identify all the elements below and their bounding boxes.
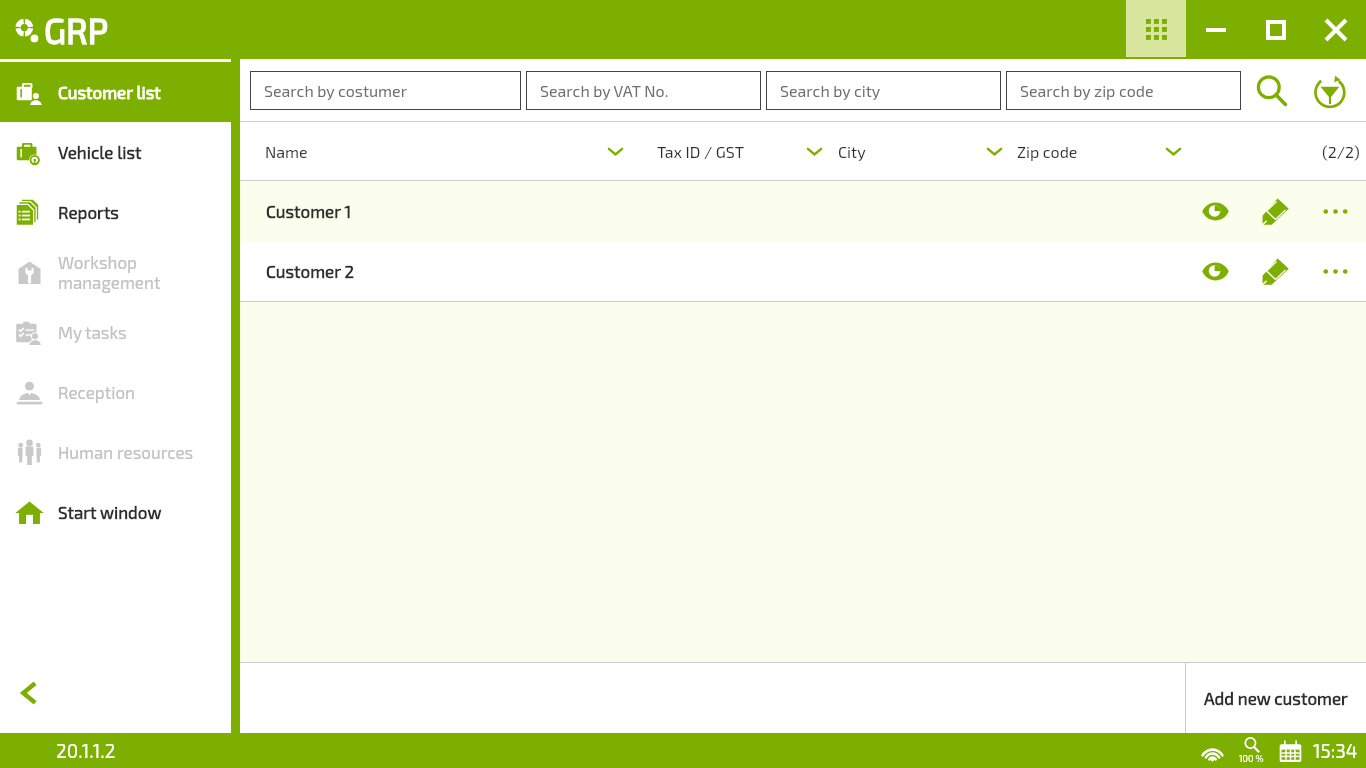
button[interactable]: Close [1306, 0, 1366, 59]
button[interactable]: Customer 1 [240, 181, 1366, 241]
button[interactable]: Minimize [1186, 0, 1246, 59]
staticText: Start window [58, 502, 162, 522]
staticText: Customer list [58, 82, 161, 102]
staticText: Human resources [58, 442, 194, 462]
staticText: Zip code [1017, 142, 1078, 161]
button[interactable]: City [838, 122, 1010, 180]
button[interactable]: Collapse menu [0, 653, 231, 733]
staticText: Workshop management [58, 252, 161, 292]
staticText: Customer 2 [266, 261, 354, 281]
button[interactable]: Workshop management [0, 242, 231, 302]
button[interactable]: Calendar [1273, 734, 1307, 768]
button[interactable]: Maximize [1246, 0, 1306, 59]
button[interactable]: Search [1253, 72, 1291, 110]
button[interactable]: Edit [1253, 189, 1297, 233]
staticText: 15:34 [1313, 739, 1358, 762]
button[interactable]: Search by zip code [1006, 71, 1241, 110]
button[interactable]: Zoom level [1233, 733, 1269, 768]
button[interactable]: Search by city [766, 71, 1001, 110]
button[interactable]: More options [1313, 249, 1357, 293]
button[interactable]: Search by costumer [250, 71, 521, 110]
staticText: Vehicle list [58, 142, 142, 162]
button[interactable]: Reset filter [1312, 72, 1350, 110]
button[interactable]: Start window [0, 482, 231, 542]
staticText: Name [265, 142, 308, 161]
button[interactable]: My tasks [0, 302, 231, 362]
staticText: Customer 1 [266, 201, 352, 221]
button[interactable]: Name [265, 122, 655, 180]
staticText: City [838, 142, 866, 161]
staticText: Search by costumer [264, 81, 408, 100]
staticText: Search by city [780, 81, 881, 100]
staticText: My tasks [58, 322, 127, 342]
button[interactable]: More options [1313, 189, 1357, 233]
button[interactable]: View [1193, 249, 1237, 293]
staticText: 20.1.1.2 [56, 739, 116, 762]
staticText: 100 % [1239, 753, 1264, 764]
button[interactable]: Tax ID / GST [657, 122, 829, 180]
staticText: (2/2) [1322, 142, 1360, 161]
staticText: Tax ID / GST [657, 142, 745, 161]
button[interactable]: View [1193, 189, 1237, 233]
staticText: Add new customer [1204, 688, 1348, 708]
staticText: Search by zip code [1020, 81, 1154, 100]
button[interactable]: Wifi [1195, 734, 1229, 768]
staticText: Reception [58, 382, 135, 402]
button[interactable]: Edit [1253, 249, 1297, 293]
button[interactable]: Vehicle list [0, 122, 231, 182]
staticText: Search by VAT No. [540, 81, 669, 100]
staticText: GRP [44, 9, 109, 51]
button[interactable]: Reception [0, 362, 231, 422]
staticText: Reports [58, 202, 119, 222]
button[interactable]: Zip code [1017, 122, 1189, 180]
button[interactable]: Human resources [0, 422, 231, 482]
button[interactable]: Reports [0, 182, 231, 242]
button[interactable]: Customer list [0, 62, 231, 122]
button[interactable]: Add new customer [1186, 663, 1366, 733]
button[interactable]: Apps [1126, 0, 1186, 59]
button[interactable]: Customer 2 [240, 241, 1366, 301]
button[interactable]: Search by VAT No. [526, 71, 761, 110]
